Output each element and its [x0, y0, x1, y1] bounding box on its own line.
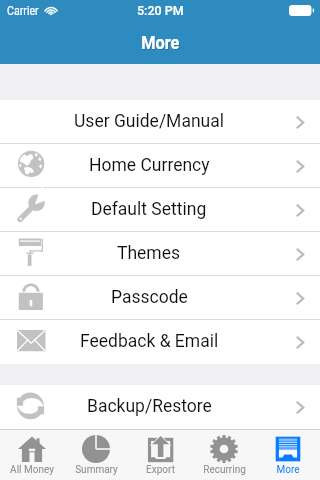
button[interactable]: Themes: [0, 232, 320, 276]
staticText: Summary: [75, 464, 118, 476]
button[interactable]: Summary: [64, 430, 128, 480]
button[interactable]: More: [256, 430, 320, 480]
staticText: User Guide/Manual: [74, 111, 225, 132]
staticText: Default Setting: [91, 199, 207, 220]
staticText: Backup/Restore: [87, 396, 212, 417]
button[interactable]: Backup/Restore: [0, 385, 320, 429]
staticText: More: [141, 31, 180, 53]
button[interactable]: Recurring: [192, 430, 256, 480]
button[interactable]: Home Currency: [0, 144, 320, 188]
button[interactable]: Default Setting: [0, 188, 320, 232]
staticText: Feedback & Email: [80, 331, 219, 352]
staticText: Carrier: [7, 3, 39, 18]
staticText: Recurring: [203, 464, 246, 476]
button[interactable]: All Money: [0, 430, 64, 480]
staticText: Themes: [117, 243, 181, 264]
button[interactable]: Passcode: [0, 276, 320, 320]
staticText: 5:20 PM: [137, 3, 184, 18]
button[interactable]: Feedback & Email: [0, 320, 320, 364]
staticText: Export: [146, 464, 175, 476]
staticText: Home Currency: [89, 155, 210, 176]
button[interactable]: Export: [128, 430, 192, 480]
staticText: More: [142, 32, 181, 54]
staticText: More: [276, 464, 300, 476]
button[interactable]: User Guide/Manual: [0, 100, 320, 144]
staticText: Passcode: [111, 287, 188, 308]
staticText: All Money: [10, 464, 54, 476]
